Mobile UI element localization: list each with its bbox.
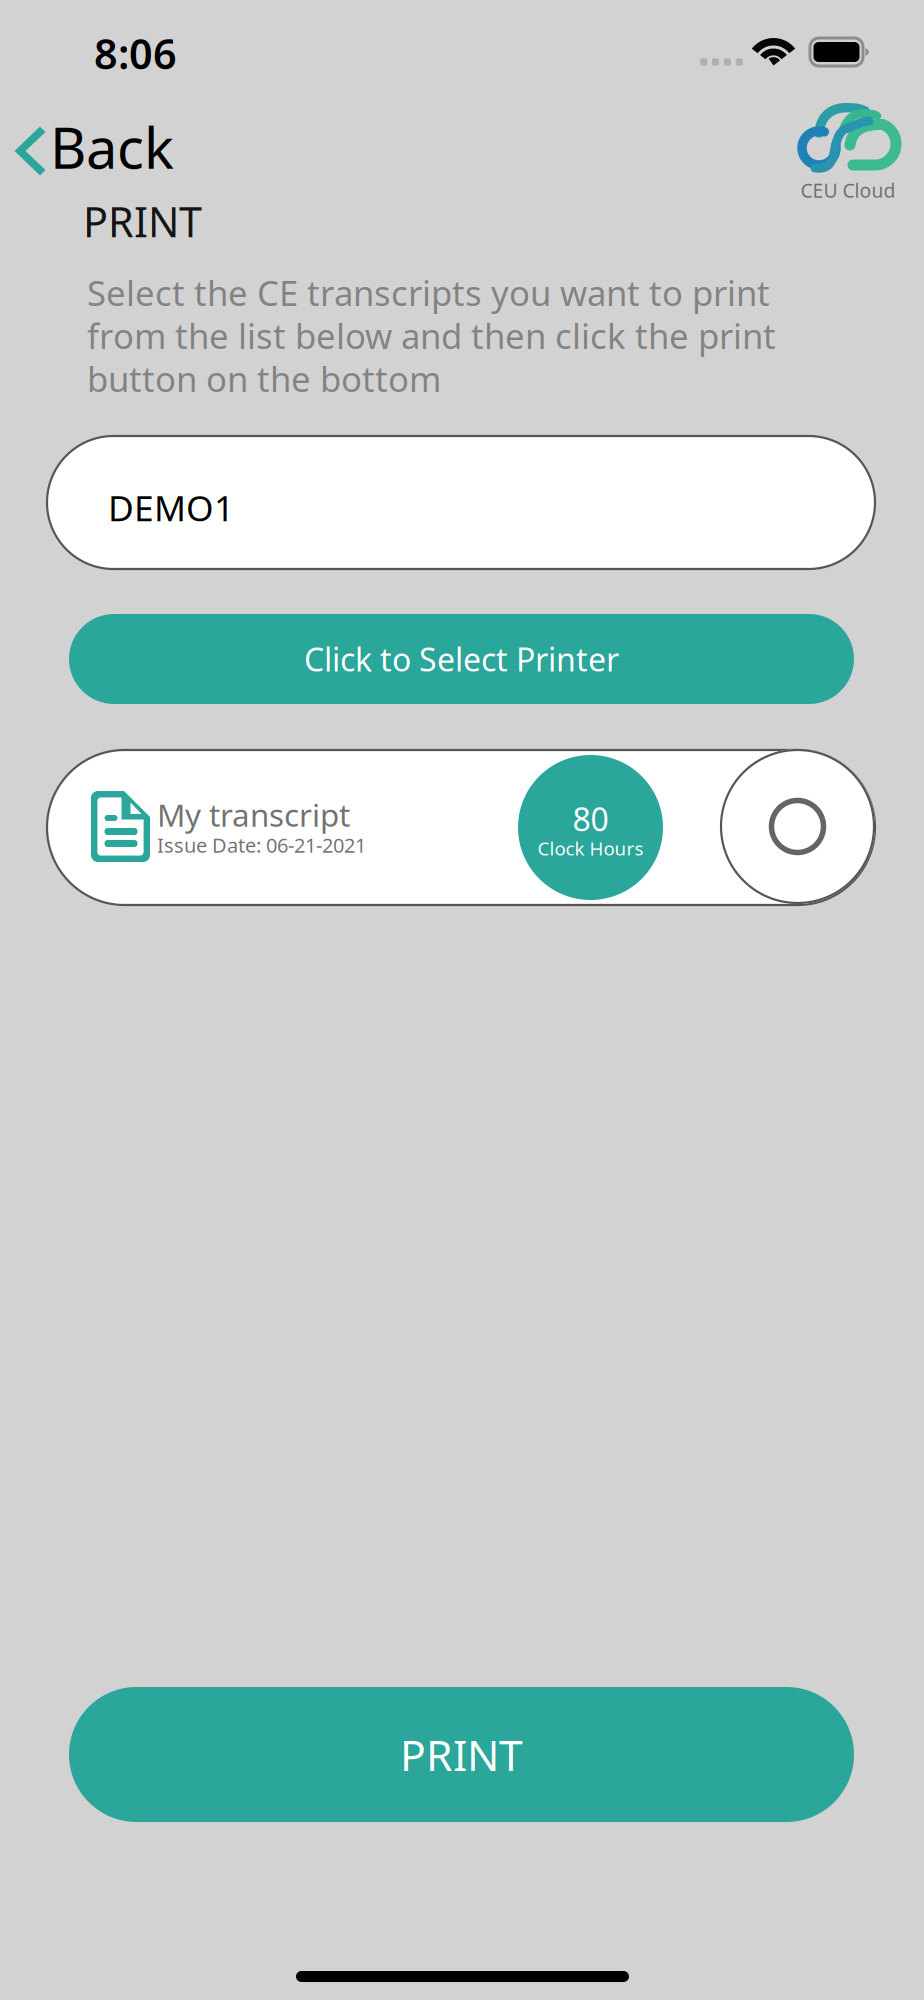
staticText: 80 — [572, 797, 608, 841]
button[interactable]: Back — [10, 121, 190, 181]
staticText: from the list below and then click the p… — [87, 312, 776, 359]
button[interactable]: Click to Select Printer — [69, 614, 854, 704]
staticText: Back — [50, 109, 174, 185]
staticText: PRINT — [83, 193, 202, 249]
button[interactable]: PRINT — [69, 1687, 854, 1822]
staticText: Issue Date: 06-21-2021 — [157, 831, 366, 859]
staticText: PRINT — [400, 1725, 523, 1783]
staticText: 8:06 — [94, 25, 177, 81]
staticText: Select the CE transcripts you want to pr… — [87, 269, 770, 316]
staticText: Click to Select Printer — [304, 637, 619, 681]
staticText: CEU Cloud — [800, 177, 895, 203]
staticText: Clock Hours — [537, 836, 643, 861]
staticText: button on the bottom — [87, 355, 441, 402]
staticText: My transcript — [157, 793, 350, 836]
button[interactable]: My transcript — [47, 750, 875, 905]
staticText: DEMO1 — [108, 483, 234, 531]
button[interactable]: CEU Cloud — [796, 103, 900, 203]
